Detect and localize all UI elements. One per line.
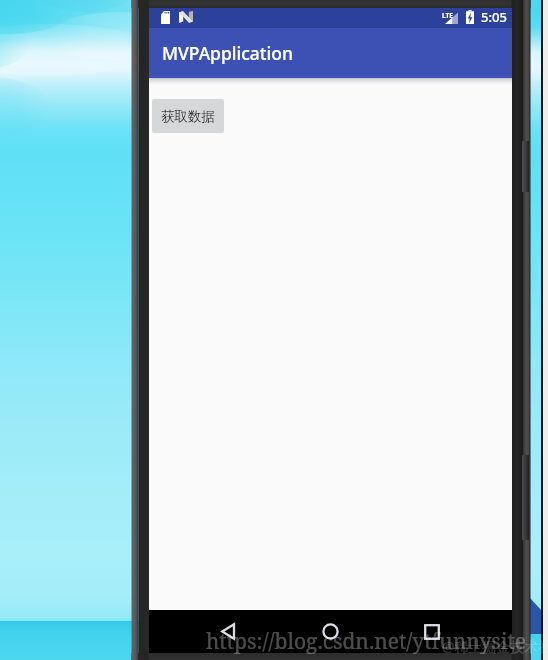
button[interactable]: Recents [402, 610, 462, 653]
button[interactable]: Back [198, 610, 258, 653]
staticText: 5:05 [481, 8, 507, 26]
staticText: @稀土掘金技术社区 [442, 637, 548, 656]
button[interactable]: 获取数据 [152, 99, 224, 133]
staticText: MVPApplication [162, 41, 293, 65]
staticText: 获取数据 [161, 108, 215, 125]
staticText: LTE [442, 11, 453, 20]
button[interactable]: Home [300, 610, 360, 653]
staticText: https://blog.csdn.net/ytfunnysite [206, 627, 527, 656]
